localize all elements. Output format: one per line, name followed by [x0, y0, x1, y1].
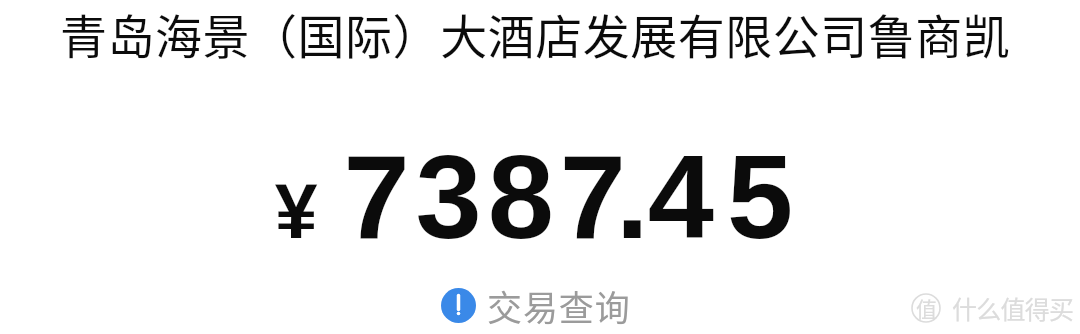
button[interactable]: 交易查询 Transaction query: [441, 280, 631, 331]
staticText: 交易查询: [487, 280, 631, 331]
staticText: 什么值得买: [952, 290, 1074, 326]
staticText: 青岛海景（国际）大酒店发展有限公司鲁商凯: [60, 0, 1076, 67]
staticText: ¥7387.45: [0, 130, 1074, 263]
staticText: 值: [916, 293, 937, 323]
